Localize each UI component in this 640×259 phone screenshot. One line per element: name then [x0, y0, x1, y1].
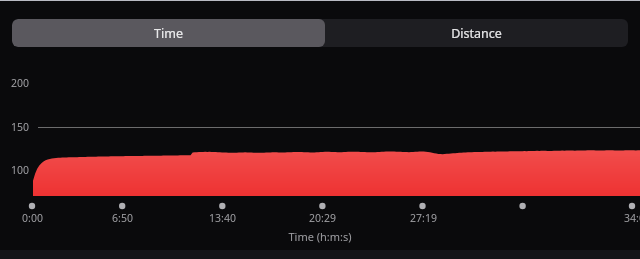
staticText: 13:40	[209, 211, 236, 225]
staticText: 34:0	[624, 211, 640, 225]
staticText: 6:50	[112, 211, 133, 225]
staticText: 100	[11, 163, 30, 177]
staticText: Time (h:m:s)	[288, 229, 352, 244]
button[interactable]: Distance	[325, 19, 628, 47]
staticText: 27:19	[410, 211, 437, 225]
staticText: 150	[11, 120, 30, 134]
button[interactable]: Time	[12, 19, 325, 47]
staticText: Distance	[451, 25, 502, 42]
staticText: Time	[154, 25, 183, 42]
staticText: 200	[11, 76, 30, 90]
staticText: 0:00	[22, 211, 43, 225]
staticText: 20:29	[309, 211, 336, 225]
